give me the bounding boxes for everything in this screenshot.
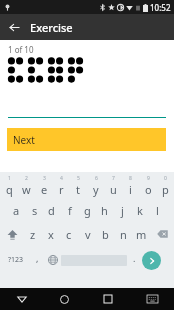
button[interactable]: ,: [29, 249, 45, 271]
button[interactable]: Back: [3, 16, 25, 38]
staticText: b: [102, 227, 109, 242]
staticText: t: [76, 182, 80, 197]
button[interactable]: 7: [105, 175, 121, 197]
staticText: x: [48, 227, 54, 242]
staticText: ?123: [8, 255, 24, 265]
button[interactable]: 3: [36, 175, 52, 197]
button[interactable]: l: [150, 199, 165, 221]
button[interactable]: 2: [18, 175, 34, 197]
staticText: q: [6, 182, 13, 197]
staticText: l: [156, 203, 159, 218]
staticText: u: [110, 182, 117, 197]
staticText: f: [68, 203, 72, 218]
staticText: r: [59, 182, 64, 197]
staticText: w: [22, 182, 31, 197]
staticText: v: [85, 227, 91, 242]
button[interactable]: 8: [122, 175, 138, 197]
staticText: n: [120, 227, 127, 242]
staticText: m: [136, 227, 147, 242]
staticText: .: [133, 252, 136, 264]
button[interactable]: 0: [157, 175, 173, 197]
staticText: d: [48, 203, 55, 218]
button[interactable]: 6: [88, 175, 104, 197]
staticText: p: [162, 182, 169, 197]
staticText: 9: [147, 175, 150, 182]
button[interactable]: v: [80, 223, 95, 245]
staticText: 3: [43, 175, 46, 182]
button[interactable]: 5: [70, 175, 86, 197]
button[interactable]: m: [134, 223, 149, 245]
staticText: g: [84, 203, 91, 218]
button[interactable]: c: [61, 223, 76, 245]
button[interactable]: Recent apps: [86, 288, 130, 310]
button[interactable]: n: [116, 223, 131, 245]
button[interactable]: Next: [7, 128, 166, 151]
button[interactable]: z: [25, 223, 40, 245]
staticText: 4: [60, 175, 63, 182]
staticText: y: [93, 182, 99, 197]
staticText: z: [30, 227, 36, 242]
staticText: c: [66, 227, 72, 242]
button[interactable]: f: [62, 199, 77, 221]
button[interactable]: Backspace: [152, 223, 172, 245]
staticText: 5: [77, 175, 80, 182]
button[interactable]: Shift: [2, 223, 22, 245]
button[interactable]: a: [9, 199, 24, 221]
button[interactable]: Back: [0, 288, 43, 310]
staticText: j: [121, 203, 124, 218]
button[interactable]: 9: [140, 175, 156, 197]
button[interactable]: d: [44, 199, 59, 221]
button[interactable]: j: [115, 199, 130, 221]
staticText: k: [137, 203, 143, 218]
button[interactable]: 4: [53, 175, 69, 197]
staticText: h: [101, 203, 108, 218]
staticText: e: [41, 182, 48, 197]
staticText: 0: [164, 175, 167, 182]
button[interactable]: k: [132, 199, 147, 221]
staticText: 1 of 10: [8, 44, 34, 55]
button[interactable]: Switch keyboard: [130, 288, 174, 310]
staticText: 10:52: [150, 2, 171, 13]
button[interactable]: Change keyboard language: [45, 249, 61, 271]
staticText: 1: [8, 175, 11, 182]
button[interactable]: x: [43, 223, 58, 245]
staticText: s: [32, 203, 38, 218]
staticText: o: [145, 182, 152, 197]
staticText: a: [13, 203, 20, 218]
button[interactable]: Home: [43, 288, 86, 310]
button[interactable]: ?123: [3, 249, 29, 271]
button[interactable]: 1: [1, 175, 17, 197]
button[interactable]: Send: [142, 251, 161, 270]
button[interactable]: b: [98, 223, 113, 245]
button[interactable]: s: [27, 199, 42, 221]
staticText: 6: [95, 175, 98, 182]
button[interactable]: h: [97, 199, 112, 221]
staticText: i: [129, 182, 132, 197]
staticText: ,: [36, 252, 39, 264]
staticText: Exercise: [30, 20, 73, 35]
button[interactable]: g: [80, 199, 95, 221]
staticText: 8: [129, 175, 132, 182]
button[interactable]: .: [127, 249, 142, 271]
staticText: Next: [13, 133, 35, 147]
staticText: 2: [25, 175, 28, 182]
staticText: 7: [112, 175, 115, 182]
